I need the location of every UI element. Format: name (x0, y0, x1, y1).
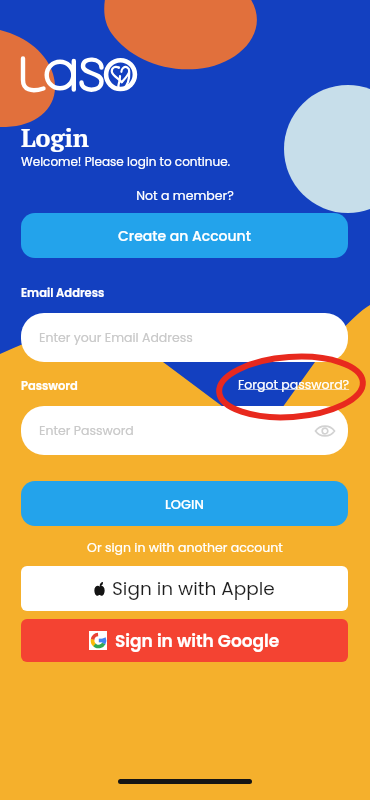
button[interactable]: Enter your Email Address (21, 313, 348, 362)
staticText: Password (21, 378, 78, 394)
staticText: Or sign in with another account (0, 539, 370, 556)
staticText: Login (21, 121, 89, 154)
staticText: LOGIN (165, 495, 204, 513)
staticText: Sign in with Apple (112, 576, 275, 602)
button[interactable]: Show password (312, 418, 338, 444)
button[interactable]: Sign in with Google (21, 619, 348, 662)
button[interactable]: LOGIN (21, 481, 348, 526)
staticText: Enter your Email Address (39, 329, 193, 346)
staticText: Welcome! Please login to continue. (21, 153, 231, 170)
staticText: Not a member? (0, 187, 370, 204)
button[interactable]: Forgot password? (238, 376, 350, 393)
staticText: Forgot password? (238, 376, 350, 393)
staticText: Email Address (21, 285, 105, 301)
staticText: Enter Password (39, 422, 134, 439)
button[interactable]: Sign in with Apple (21, 566, 348, 611)
button[interactable]: Enter Password (21, 406, 348, 455)
button[interactable]: Create an Account (21, 213, 348, 258)
staticText: Create an Account (118, 226, 251, 246)
staticText: Sign in with Google (115, 629, 280, 653)
